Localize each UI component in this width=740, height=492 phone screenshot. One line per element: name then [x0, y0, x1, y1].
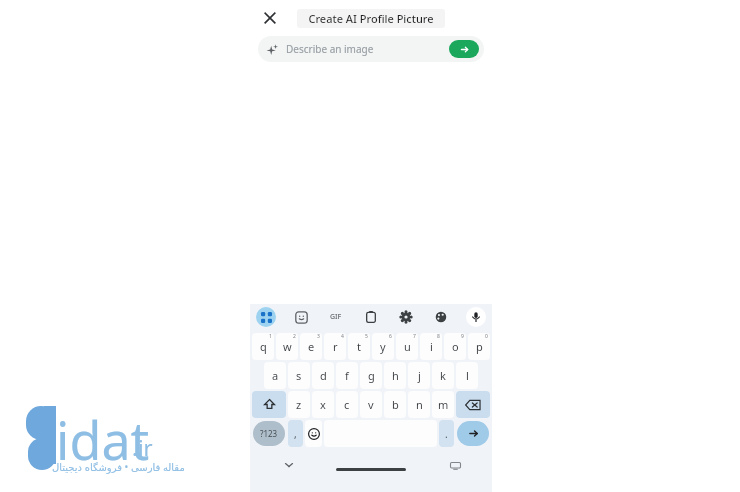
- staticText: m: [438, 397, 449, 412]
- staticText: g: [368, 368, 375, 383]
- staticText: t: [357, 339, 361, 354]
- button[interactable]: Emoji: [305, 420, 322, 447]
- button[interactable]: o: [444, 333, 466, 360]
- staticText: c: [344, 397, 350, 412]
- staticText: x: [320, 397, 326, 412]
- button[interactable]: Enter: [457, 421, 489, 446]
- staticText: 9: [461, 333, 464, 340]
- button[interactable]: j: [408, 362, 430, 389]
- button[interactable]: n: [408, 391, 430, 418]
- button[interactable]: m: [432, 391, 454, 418]
- button[interactable]: z: [288, 391, 310, 418]
- button[interactable]: Apps: [256, 307, 276, 327]
- button[interactable]: GIF: [326, 307, 346, 327]
- staticText: q: [260, 339, 267, 354]
- staticText: .ir: [132, 432, 153, 462]
- button[interactable]: g: [360, 362, 382, 389]
- button[interactable]: y: [372, 333, 394, 360]
- staticText: 0: [485, 333, 488, 340]
- button[interactable]: p: [468, 333, 490, 360]
- button[interactable]: k: [432, 362, 454, 389]
- button[interactable]: Switch keyboard: [446, 456, 464, 474]
- staticText: d: [320, 368, 327, 383]
- staticText: k: [440, 368, 446, 383]
- staticText: o: [452, 339, 459, 354]
- button[interactable]: Describe an image: [258, 36, 484, 62]
- staticText: a: [272, 368, 279, 383]
- staticText: Describe an image: [286, 42, 374, 56]
- button[interactable]: v: [360, 391, 382, 418]
- staticText: 7: [413, 333, 416, 340]
- staticText: y: [380, 339, 386, 354]
- staticText: e: [308, 339, 315, 354]
- button[interactable]: q: [252, 333, 274, 360]
- button[interactable]: b: [384, 391, 406, 418]
- button[interactable]: l: [456, 362, 478, 389]
- staticText: b: [392, 397, 399, 412]
- staticText: idat: [56, 404, 150, 475]
- button[interactable]: h: [384, 362, 406, 389]
- staticText: h: [392, 368, 399, 383]
- staticText: r: [333, 339, 338, 354]
- button[interactable]: s: [288, 362, 310, 389]
- staticText: z: [296, 397, 302, 412]
- button[interactable]: r: [324, 333, 346, 360]
- staticText: n: [416, 397, 423, 412]
- staticText: s: [296, 368, 302, 383]
- button[interactable]: Voice input: [466, 307, 486, 327]
- staticText: ,: [294, 427, 297, 441]
- button[interactable]: Period: [439, 420, 454, 447]
- button[interactable]: x: [312, 391, 334, 418]
- button[interactable]: Close: [258, 6, 282, 30]
- staticText: j: [418, 368, 421, 383]
- staticText: i: [430, 339, 433, 354]
- button[interactable]: Generate: [449, 40, 479, 58]
- staticText: مقاله فارسی • فروشگاه دیجیتال: [52, 460, 185, 474]
- staticText: 4: [341, 333, 344, 340]
- staticText: f: [345, 368, 349, 383]
- button[interactable]: c: [336, 391, 358, 418]
- staticText: 6: [389, 333, 392, 340]
- button[interactable]: w: [276, 333, 298, 360]
- button[interactable]: Clipboard: [361, 307, 381, 327]
- staticText: l: [466, 368, 469, 383]
- button[interactable]: u: [396, 333, 418, 360]
- button[interactable]: Stickers: [291, 307, 311, 327]
- staticText: v: [368, 397, 374, 412]
- button[interactable]: d: [312, 362, 334, 389]
- button[interactable]: t: [348, 333, 370, 360]
- staticText: p: [476, 339, 483, 354]
- staticText: GIF: [330, 312, 342, 322]
- staticText: Create AI Profile Picture: [308, 11, 434, 26]
- button[interactable]: Hide keyboard: [280, 456, 298, 474]
- button[interactable]: ?123: [253, 421, 285, 446]
- button[interactable]: f: [336, 362, 358, 389]
- button[interactable]: Shift: [252, 391, 286, 418]
- button[interactable]: Comma: [288, 420, 303, 447]
- button[interactable]: a: [264, 362, 286, 389]
- staticText: 3: [317, 333, 320, 340]
- staticText: u: [404, 339, 411, 354]
- staticText: ?123: [260, 428, 278, 439]
- button[interactable]: i: [420, 333, 442, 360]
- staticText: 5: [365, 333, 368, 340]
- staticText: .: [445, 427, 448, 441]
- staticText: w: [283, 339, 292, 354]
- button[interactable]: Theme: [431, 307, 451, 327]
- button[interactable]: Settings: [396, 307, 416, 327]
- staticText: 1: [269, 333, 272, 340]
- staticText: 8: [437, 333, 440, 340]
- button[interactable]: Backspace: [456, 391, 490, 418]
- staticText: 2: [293, 333, 296, 340]
- button[interactable]: e: [300, 333, 322, 360]
